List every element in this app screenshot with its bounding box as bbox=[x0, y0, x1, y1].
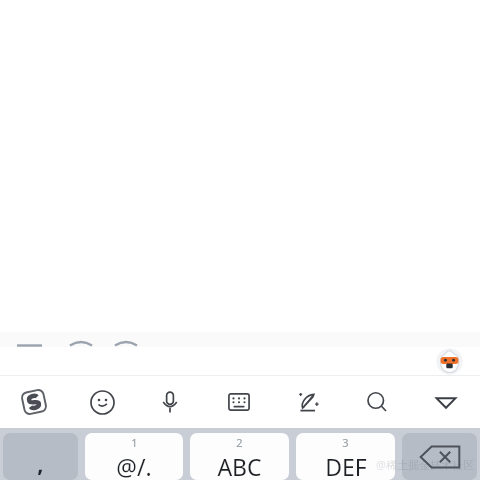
button[interactable]: Backspace bbox=[402, 433, 477, 480]
staticText: ABC bbox=[217, 451, 262, 480]
button[interactable]: Hide keyboard bbox=[411, 376, 480, 428]
button[interactable]: 3 bbox=[296, 433, 395, 480]
staticText: @稀土掘金技术社区 bbox=[376, 457, 474, 472]
button[interactable]: Voice input bbox=[136, 376, 204, 428]
button[interactable]: Sogou input bbox=[0, 376, 68, 428]
button[interactable]: Comma bbox=[3, 433, 78, 480]
button[interactable]: Emoji bbox=[68, 376, 136, 428]
staticText: DEF bbox=[325, 451, 367, 480]
button[interactable]: 1 bbox=[85, 433, 183, 480]
button[interactable]: Search bbox=[342, 376, 411, 428]
button[interactable]: Sogou assistant bbox=[436, 348, 463, 375]
button[interactable]: AI writing bbox=[273, 376, 342, 428]
staticText: 3 bbox=[342, 435, 349, 450]
staticText: , bbox=[37, 448, 44, 478]
staticText: 2 bbox=[236, 435, 243, 450]
staticText: 1 bbox=[131, 435, 138, 450]
staticText: @/. bbox=[116, 451, 152, 480]
button[interactable]: 2 bbox=[190, 433, 289, 480]
button[interactable]: Keyboard layout bbox=[204, 376, 273, 428]
